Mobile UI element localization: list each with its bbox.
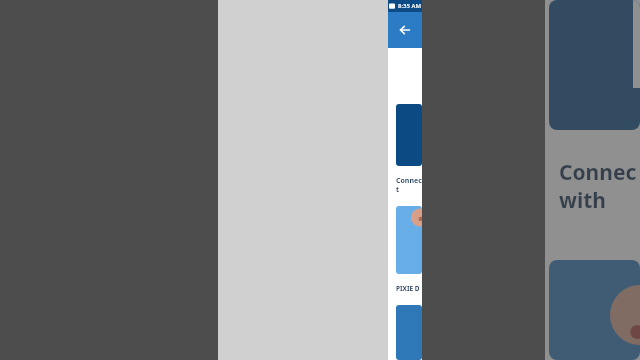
staticText: Connect with try — [396, 176, 422, 194]
staticText: Connec with try — [559, 158, 640, 214]
button[interactable] — [396, 305, 422, 360]
staticText: PIXIE D — [396, 284, 420, 293]
button[interactable] — [396, 104, 422, 166]
button[interactable]: Back — [388, 12, 422, 48]
button[interactable] — [396, 206, 422, 274]
staticText: 8:35 AM — [398, 2, 421, 10]
